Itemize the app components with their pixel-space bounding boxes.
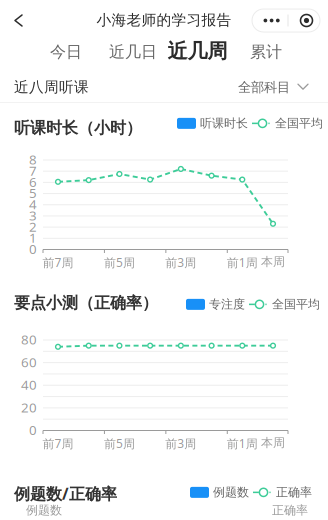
staticText: 全部科目: [238, 79, 290, 95]
staticText: 本周: [261, 254, 285, 269]
staticText: 前5周: [104, 435, 135, 451]
staticText: 听课时长: [200, 116, 248, 131]
staticText: 近几周: [167, 39, 227, 63]
staticText: 0: [29, 421, 37, 439]
staticText: 40: [21, 376, 37, 393]
button[interactable]: 今日: [43, 37, 89, 67]
staticText: 4: [29, 195, 37, 213]
staticText: 前1周: [227, 254, 258, 270]
staticText: 今日: [50, 42, 82, 62]
staticText: 小海老师的学习报告: [96, 11, 231, 29]
staticText: 20: [21, 398, 37, 416]
button[interactable]: 全部科目: [232, 72, 315, 102]
button[interactable]: Back: [4, 4, 34, 38]
button[interactable]: 累计: [243, 37, 289, 67]
staticText: 60: [21, 353, 37, 371]
staticText: 听课时长（小时）: [14, 118, 142, 138]
staticText: 前7周: [42, 254, 73, 270]
staticText: 8: [29, 150, 37, 168]
staticText: 近八周听课: [14, 78, 89, 96]
staticText: 本周: [261, 435, 285, 450]
staticText: 近几日: [109, 42, 157, 62]
staticText: 全国平均: [275, 116, 323, 131]
button[interactable]: 近几日: [107, 37, 159, 67]
staticText: 前5周: [104, 254, 135, 270]
staticText: 0: [29, 240, 37, 258]
staticText: 例题数: [213, 485, 249, 500]
staticText: 专注度: [209, 297, 245, 312]
staticText: 要点小测（正确率）: [14, 293, 158, 313]
button[interactable]: More: [252, 9, 287, 32]
staticText: 前7周: [42, 435, 73, 451]
staticText: 正确率: [272, 503, 308, 518]
staticText: 7: [29, 162, 37, 179]
staticText: 前3周: [165, 254, 196, 270]
staticText: 5: [29, 184, 37, 202]
button[interactable]: 近几周: [166, 36, 228, 66]
staticText: 正确率: [276, 485, 312, 500]
staticText: 前3周: [165, 435, 196, 451]
staticText: 全国平均: [272, 297, 320, 312]
staticText: 2: [29, 218, 37, 235]
staticText: 前1周: [227, 435, 258, 451]
staticText: 6: [29, 173, 37, 191]
staticText: 1: [29, 229, 37, 246]
staticText: 例题数: [26, 503, 62, 518]
staticText: 80: [21, 330, 37, 348]
staticText: 例题数/正确率: [14, 483, 117, 504]
staticText: 累计: [250, 42, 282, 62]
button[interactable]: Close: [290, 9, 323, 32]
staticText: 3: [29, 206, 37, 224]
